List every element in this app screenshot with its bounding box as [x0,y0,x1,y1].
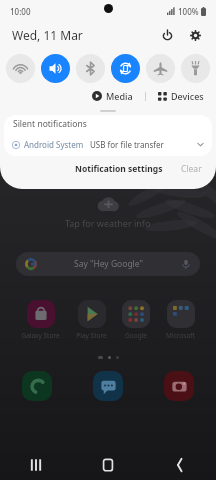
button[interactable]: Settings [184,24,206,46]
button[interactable]: Devices [154,87,208,105]
staticText: 10:00 [10,6,31,17]
button[interactable]: Home [72,450,144,480]
button[interactable]: Flashlight [181,54,210,83]
button[interactable]: Say "Hey Google" [16,252,200,276]
button[interactable]: Sound [41,54,70,83]
button[interactable]: Wi-Fi [6,54,35,83]
staticText: Media [106,90,133,102]
staticText: Google [125,331,147,340]
button[interactable]: Notification settings [71,161,167,177]
button[interactable]: Media [88,87,137,105]
staticText: Microsoft [166,331,195,340]
button[interactable]: Bluetooth [76,54,105,83]
button[interactable]: Clear [177,161,206,177]
button[interactable]: Recents [0,450,72,480]
button[interactable]: Power off [156,24,178,46]
button[interactable]: Back [144,450,216,480]
staticText: Say "Hey Google" [74,258,143,270]
button[interactable]: Android System [4,133,212,156]
button[interactable]: Play Store [74,298,109,342]
button[interactable]: Galaxy Store [19,298,62,342]
staticText: Silent notifications [13,118,87,130]
button[interactable]: Auto rotate [111,54,140,83]
button[interactable]: Airplane mode [146,54,175,83]
staticText: Galaxy Store [21,331,60,340]
staticText: Notification settings [75,163,163,175]
button[interactable]: Google [120,298,152,342]
staticText: Tap for weather info [65,217,151,229]
staticText: Android System [24,139,84,150]
button[interactable]: Phone [22,371,52,401]
button[interactable]: Microsoft [164,298,197,342]
staticText: USB for file transfer [90,139,164,150]
staticText: 100% [178,6,199,17]
button[interactable]: Camera [164,371,194,401]
button[interactable]: Messages [93,371,123,401]
staticText: Play Store [76,331,107,340]
staticText: Wed, 11 Mar [12,27,83,43]
staticText: Clear [181,163,202,175]
staticText: Devices [171,90,204,102]
